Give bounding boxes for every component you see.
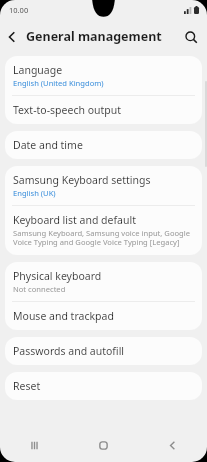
staticText: Mouse and trackpad (13, 309, 114, 323)
button[interactable]: Reset (5, 372, 202, 400)
staticText: Keyboard list and default (13, 213, 136, 227)
button[interactable]: Mouse and trackpad (5, 302, 202, 330)
button[interactable]: Keyboard list and default (5, 206, 202, 255)
button[interactable]: Samsung Keyboard settings (5, 166, 202, 205)
staticText: Text-to-speech output (13, 103, 122, 117)
staticText: Language (13, 63, 63, 77)
staticText: Samsung Keyboard settings (13, 173, 151, 187)
button[interactable]: Recents (0, 429, 69, 462)
button[interactable]: Physical keyboard (5, 262, 202, 301)
button[interactable]: Back (138, 429, 207, 462)
staticText: 10.00 (9, 5, 29, 15)
staticText: Passwords and autofill (13, 344, 125, 358)
button[interactable]: Text-to-speech output (5, 96, 202, 124)
button[interactable]: Language (5, 56, 202, 95)
staticText: General management (26, 28, 162, 45)
staticText: Physical keyboard (13, 269, 102, 283)
button[interactable]: Date and time (5, 131, 202, 159)
staticText: English (UK) (13, 188, 56, 198)
staticText: English (United Kingdom) (13, 78, 104, 88)
button[interactable]: Back (0, 25, 24, 49)
staticText: Reset (13, 379, 41, 393)
staticText: Samsung Keyboard, Samsung voice input, G… (13, 228, 190, 248)
button[interactable]: Search (180, 26, 202, 48)
staticText: Not connected (13, 284, 66, 294)
button[interactable]: Passwords and autofill (5, 337, 202, 365)
button[interactable]: Home (69, 429, 138, 462)
staticText: Date and time (13, 138, 83, 152)
